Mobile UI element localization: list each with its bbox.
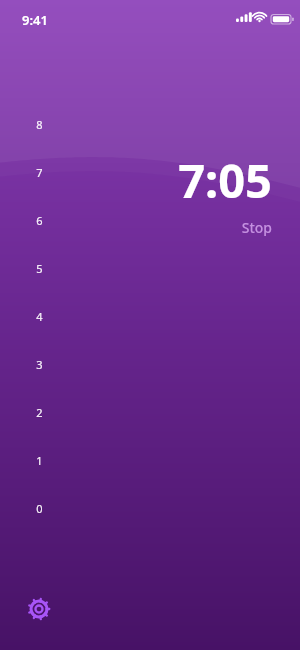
staticText: Stop	[241, 218, 272, 237]
staticText: 0	[36, 501, 43, 516]
staticText: 1	[36, 453, 43, 468]
button[interactable]: 7:05	[0, 148, 272, 237]
button[interactable]: Settings	[23, 593, 55, 625]
staticText: 7	[36, 165, 43, 180]
staticText: 6	[36, 213, 43, 228]
staticText: 7:05	[178, 148, 272, 212]
staticText: 8	[36, 117, 43, 132]
staticText: 4	[36, 309, 43, 324]
staticText: 3	[36, 357, 43, 372]
staticText: 2	[36, 405, 43, 420]
staticText: 9:41	[22, 11, 48, 29]
staticText: 5	[36, 261, 43, 276]
